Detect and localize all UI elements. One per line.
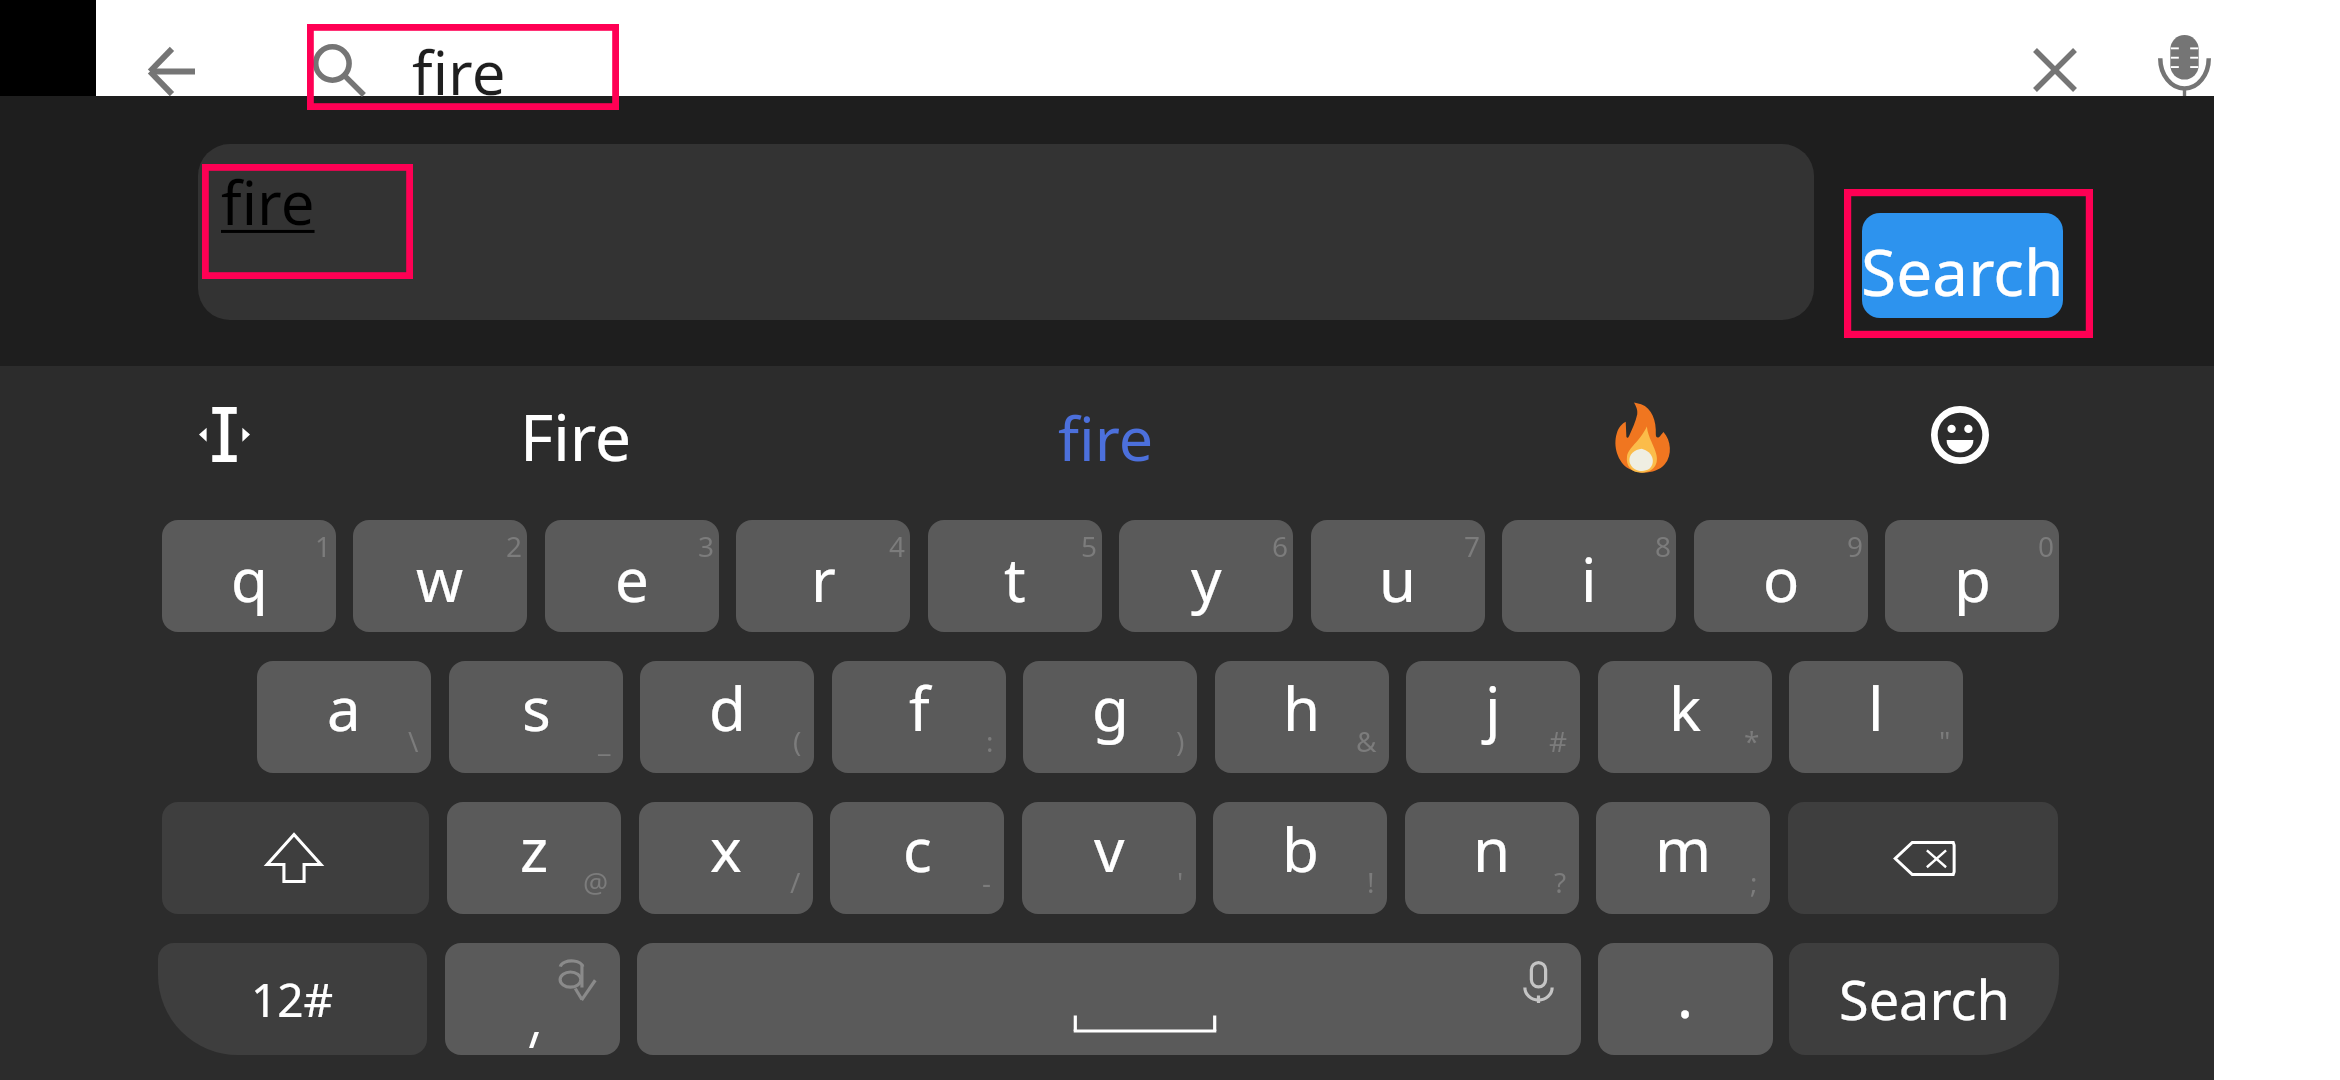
staticText: b xyxy=(1282,808,1319,890)
staticText: fire xyxy=(221,161,315,243)
staticText: 5 xyxy=(1081,527,1098,565)
button[interactable]: \ xyxy=(257,661,431,773)
button[interactable]: : xyxy=(832,661,1006,773)
staticText: ) xyxy=(1176,722,1185,760)
staticText: * xyxy=(1744,722,1760,760)
staticText: k xyxy=(1669,667,1702,749)
button[interactable]: ; xyxy=(1596,802,1770,914)
button[interactable]: _ xyxy=(449,661,623,773)
staticText: ? xyxy=(1554,863,1567,901)
button[interactable]: Search xyxy=(1789,943,2059,1055)
button[interactable]: Clear query xyxy=(2015,30,2095,110)
staticText: p xyxy=(1954,538,1991,620)
button[interactable]: Back xyxy=(121,34,221,109)
staticText: ! xyxy=(1367,863,1375,901)
button[interactable]: fire xyxy=(956,396,1256,474)
staticText: 3 xyxy=(698,527,715,565)
button[interactable]: Cursor control xyxy=(176,396,272,472)
staticText: fire xyxy=(412,31,506,113)
button[interactable]: & xyxy=(1215,661,1389,773)
button[interactable]: " xyxy=(1789,661,1963,773)
button[interactable] xyxy=(445,943,620,1055)
staticText: / xyxy=(790,863,801,901)
button[interactable]: ! xyxy=(1213,802,1387,914)
staticText: m xyxy=(1655,808,1712,890)
button[interactable]: 12# xyxy=(158,943,427,1055)
staticText: i xyxy=(1581,538,1597,620)
staticText: 9 xyxy=(1847,527,1864,565)
staticText: 7 xyxy=(1464,527,1481,565)
button[interactable]: # xyxy=(1406,661,1580,773)
button[interactable]: 6 xyxy=(1119,520,1293,632)
button[interactable]: @ xyxy=(447,802,621,914)
button[interactable]: ) xyxy=(1023,661,1197,773)
staticText: 1 xyxy=(315,527,332,565)
button[interactable]: ' xyxy=(1022,802,1196,914)
button[interactable]: Backspace xyxy=(1788,802,2058,914)
button[interactable]: 3 xyxy=(545,520,719,632)
staticText: h xyxy=(1283,667,1321,749)
staticText: w xyxy=(416,538,464,620)
button[interactable] xyxy=(198,144,1814,320)
staticText: g xyxy=(1092,667,1129,749)
staticText: l xyxy=(1868,667,1884,749)
staticText: # xyxy=(1549,722,1568,760)
staticText: @ xyxy=(583,863,609,901)
button[interactable] xyxy=(1862,213,2063,318)
button[interactable]: 8 xyxy=(1502,520,1676,632)
staticText: 6 xyxy=(1272,527,1289,565)
button[interactable]: 1 xyxy=(162,520,336,632)
staticText: fire xyxy=(1058,396,1154,474)
staticText: \ xyxy=(408,722,419,760)
staticText: 4 xyxy=(889,527,906,565)
staticText: n xyxy=(1473,808,1511,890)
staticText: j xyxy=(1485,667,1501,749)
staticText: a xyxy=(327,667,361,749)
staticText: u xyxy=(1379,538,1417,620)
staticText: ' xyxy=(1177,863,1184,901)
staticText: t xyxy=(1004,538,1026,620)
button[interactable]: 0 xyxy=(1885,520,2059,632)
button[interactable]: Space xyxy=(637,943,1581,1055)
staticText: d xyxy=(709,667,746,749)
button[interactable]: * xyxy=(1598,661,1772,773)
button[interactable]: Emoji xyxy=(1912,396,2008,474)
button[interactable]: 4 xyxy=(736,520,910,632)
button[interactable]: 7 xyxy=(1311,520,1485,632)
staticText: z xyxy=(520,808,549,890)
staticText: ( xyxy=(793,722,802,760)
button[interactable]: Shift xyxy=(162,802,429,914)
staticText: y xyxy=(1191,538,1222,620)
staticText: & xyxy=(1356,722,1377,760)
staticText: r xyxy=(811,538,836,620)
staticText: o xyxy=(1763,538,1800,620)
button[interactable]: 9 xyxy=(1694,520,1868,632)
button[interactable]: ( xyxy=(640,661,814,773)
button[interactable]: . xyxy=(1598,943,1773,1055)
button[interactable]: Fire emoji xyxy=(1595,396,1691,474)
staticText: s xyxy=(522,667,551,749)
staticText: f xyxy=(909,667,930,749)
staticText: Fire xyxy=(520,393,631,471)
staticText: _ xyxy=(598,722,611,760)
staticText: : xyxy=(986,722,994,760)
staticText: - xyxy=(982,863,992,901)
staticText: 2 xyxy=(506,527,523,565)
button[interactable]: - xyxy=(830,802,1004,914)
staticText: Search xyxy=(1839,962,2010,1036)
staticText: c xyxy=(903,808,932,890)
staticText: q xyxy=(231,538,268,620)
staticText: 12# xyxy=(251,968,334,1031)
staticText: 0 xyxy=(2038,527,2055,565)
staticText: Search xyxy=(1861,228,2064,315)
button[interactable]: Fire xyxy=(425,393,725,471)
button[interactable]: Voice search xyxy=(2144,25,2224,105)
button[interactable]: ? xyxy=(1405,802,1579,914)
staticText: ; xyxy=(1750,863,1758,901)
button[interactable]: 2 xyxy=(353,520,527,632)
staticText: 8 xyxy=(1655,527,1672,565)
staticText: . xyxy=(1677,954,1694,1036)
button[interactable]: / xyxy=(639,802,813,914)
staticText: x xyxy=(710,808,742,890)
button[interactable]: 5 xyxy=(928,520,1102,632)
